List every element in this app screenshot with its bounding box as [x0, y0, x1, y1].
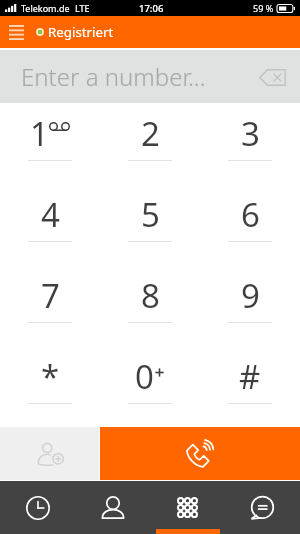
staticText: 5 [141, 192, 160, 237]
button[interactable]: Call [100, 427, 300, 480]
staticText: 4 [41, 192, 60, 237]
button[interactable]: 2 [100, 103, 200, 184]
button[interactable]: Add contact [0, 427, 99, 480]
staticText: Enter a number... [21, 60, 206, 93]
button[interactable]: Dialpad [150, 481, 225, 534]
button[interactable]: Recents [0, 481, 75, 534]
button[interactable]: 4 [0, 184, 100, 265]
staticText: 59 % [253, 2, 274, 14]
staticText: 1 [30, 111, 49, 156]
staticText: * [41, 354, 60, 399]
button[interactable]: Backspace [250, 55, 294, 99]
staticText: 6 [241, 192, 260, 237]
button[interactable]: * [0, 346, 100, 427]
button[interactable]: # [200, 346, 300, 427]
staticText: Telekom.de [21, 2, 70, 14]
staticText: 3 [241, 111, 260, 156]
button[interactable]: 3 [200, 103, 300, 184]
staticText: 7 [41, 273, 60, 318]
button[interactable]: 5 [100, 184, 200, 265]
staticText: 9 [241, 273, 260, 318]
staticText: 8 [141, 273, 160, 318]
button[interactable]: 1 [0, 103, 100, 184]
button[interactable]: Contacts [75, 481, 150, 534]
staticText: Registriert [48, 23, 114, 41]
button[interactable]: 6 [200, 184, 300, 265]
button[interactable]: Messages [225, 481, 300, 534]
staticText: 17:06 [139, 2, 164, 15]
staticText: # [239, 354, 261, 399]
button[interactable]: 8 [100, 265, 200, 346]
button[interactable]: 7 [0, 265, 100, 346]
staticText: 2 [141, 111, 160, 156]
button[interactable]: 9 [200, 265, 300, 346]
button[interactable]: Menu [0, 16, 33, 48]
staticText: LTE [75, 2, 90, 14]
button[interactable]: 0 [100, 346, 200, 427]
staticText: 0 [135, 354, 154, 399]
